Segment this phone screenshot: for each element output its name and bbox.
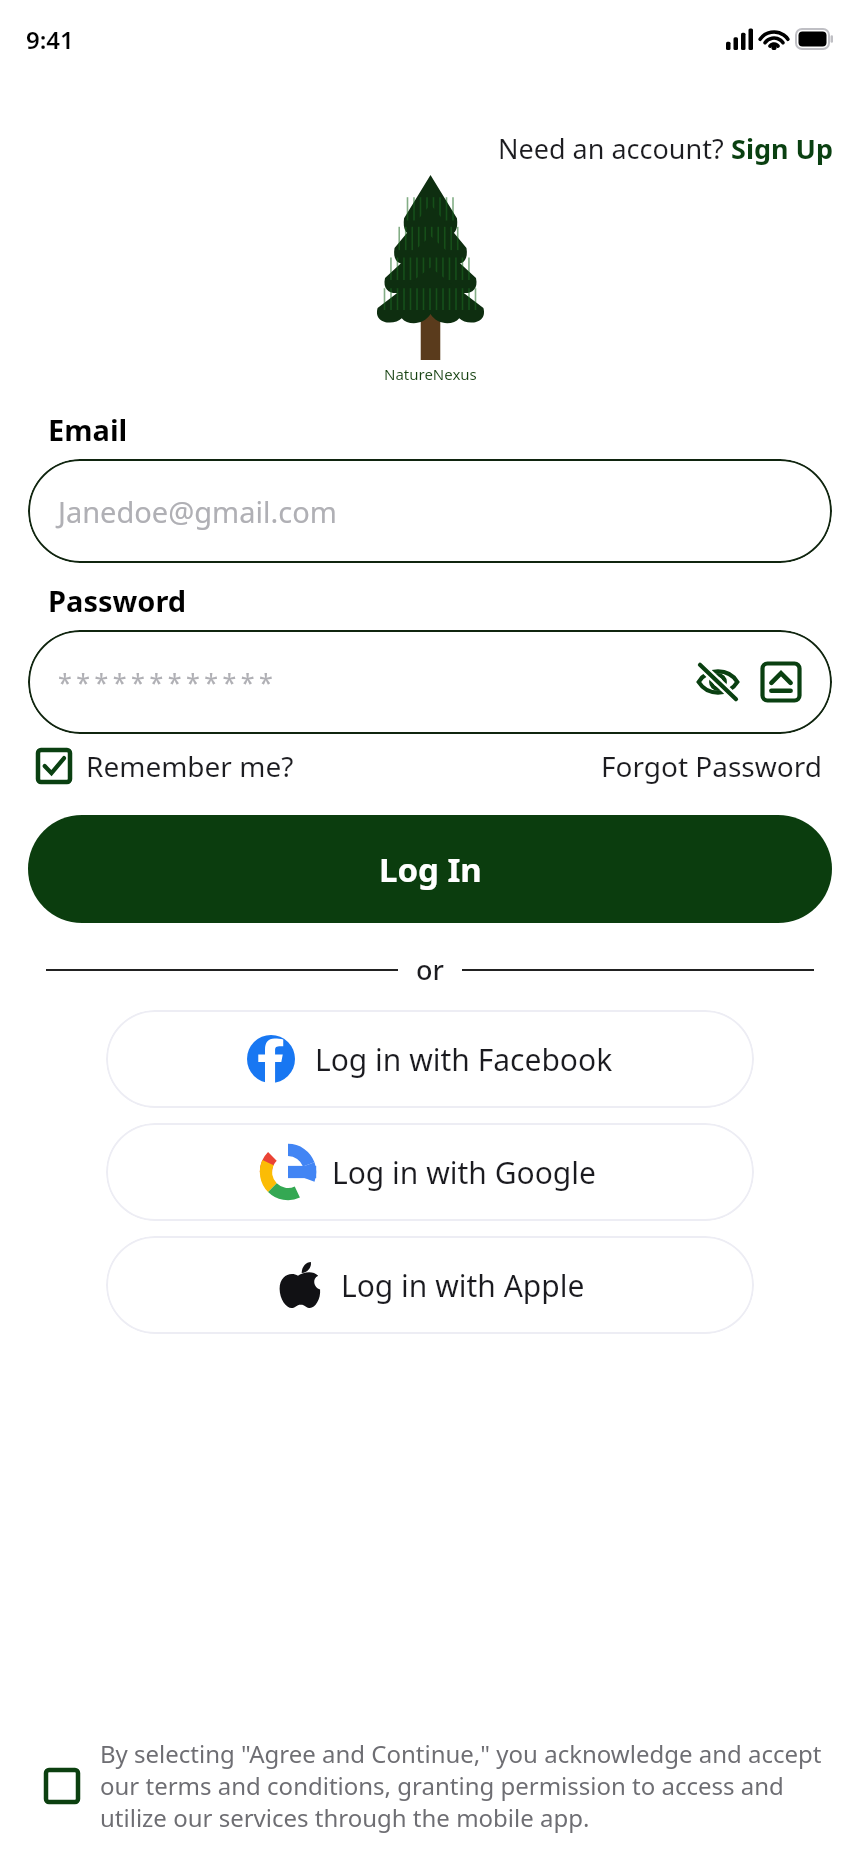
button[interactable]: Hide password bbox=[692, 656, 744, 708]
button[interactable]: Log in with Google bbox=[106, 1123, 754, 1221]
staticText: Need an account? bbox=[498, 130, 731, 167]
button[interactable]: * * * * * * * * * * * * bbox=[28, 630, 832, 734]
staticText: Password bbox=[48, 581, 860, 620]
button[interactable]: Sign Up bbox=[731, 130, 834, 167]
staticText: By selecting "Agree and Continue," you a… bbox=[100, 1737, 830, 1834]
staticText: Remember me? bbox=[86, 747, 294, 785]
button[interactable]: Log In bbox=[28, 815, 832, 923]
button[interactable]: Agree to terms bbox=[42, 1766, 82, 1806]
staticText: Log in with Facebook bbox=[315, 1039, 613, 1080]
button[interactable]: Forgot Password bbox=[601, 747, 822, 785]
staticText: Forgot Password bbox=[601, 747, 822, 785]
staticText: Janedoe@gmail.com bbox=[58, 492, 337, 531]
staticText: 9:41 bbox=[26, 23, 74, 56]
staticText: Sign Up bbox=[731, 130, 834, 167]
staticText: Log in with Apple bbox=[341, 1265, 585, 1306]
staticText: * * * * * * * * * * * * bbox=[58, 665, 272, 699]
staticText: NatureNexus bbox=[384, 364, 477, 384]
staticText: or bbox=[416, 951, 444, 988]
staticText: Log in with Google bbox=[332, 1152, 596, 1193]
button[interactable]: Log in with Facebook bbox=[106, 1010, 754, 1108]
button[interactable]: Janedoe@gmail.com bbox=[28, 459, 832, 563]
button[interactable]: Log in with Apple bbox=[106, 1236, 754, 1334]
button[interactable]: Show keyboard bbox=[758, 659, 804, 705]
button[interactable]: Remember me? bbox=[36, 747, 294, 785]
staticText: Log In bbox=[379, 847, 482, 892]
staticText: Email bbox=[48, 410, 860, 449]
